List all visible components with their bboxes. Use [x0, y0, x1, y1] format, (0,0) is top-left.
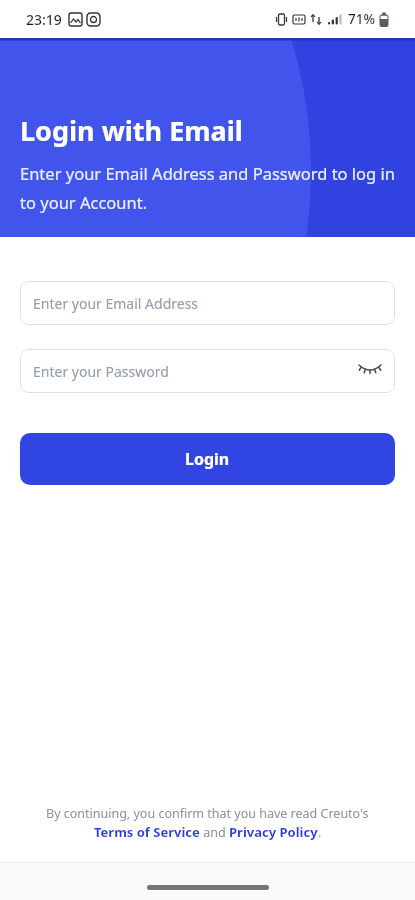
button[interactable]: Login [20, 433, 395, 485]
staticText: 23:19 [26, 10, 62, 29]
staticText: Enter your Email Address [33, 294, 199, 313]
staticText: Enter your Password [33, 362, 169, 381]
staticText: By continuing, you confirm that you have… [46, 805, 369, 822]
staticText: 71% [348, 10, 375, 28]
staticText: . [318, 824, 322, 841]
staticText: Enter your Email Address and Password to… [20, 162, 395, 214]
button[interactable]: Enter your Password [20, 349, 395, 393]
staticText: Login [185, 448, 230, 470]
staticText: and [200, 824, 229, 841]
staticText: Login with Email [20, 112, 243, 149]
button[interactable]: Terms of Service [94, 823, 200, 841]
button[interactable]: Enter your Email Address [20, 281, 395, 325]
button[interactable]: Privacy Policy [229, 823, 318, 841]
button[interactable] [357, 358, 383, 384]
